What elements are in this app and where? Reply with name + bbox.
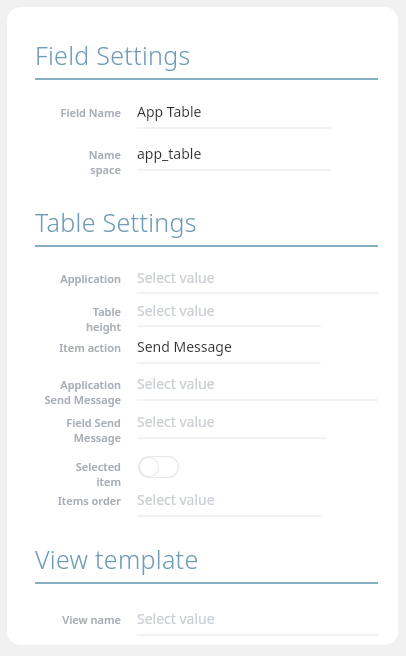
staticText: Field Send — [66, 415, 121, 430]
staticText: Table Settings — [35, 205, 197, 239]
staticText: Name — [88, 147, 121, 162]
button[interactable]: View name — [7, 609, 398, 645]
staticText: App Table — [137, 102, 202, 121]
button[interactable]: Name — [7, 144, 398, 188]
staticText: Select value — [137, 609, 215, 628]
button[interactable]: Item action — [7, 337, 398, 374]
staticText: Application — [60, 271, 121, 286]
staticText: item — [96, 474, 121, 489]
staticText: Select value — [137, 490, 215, 509]
button[interactable]: Items order — [7, 490, 398, 526]
staticText: Selected — [75, 459, 121, 474]
staticText: Send Message — [137, 337, 232, 356]
staticText: View name — [62, 612, 121, 627]
button[interactable]: Field Send — [7, 412, 398, 451]
staticText: height — [86, 319, 121, 334]
staticText: Select value — [137, 268, 215, 287]
staticText: Send Message — [44, 392, 121, 407]
staticText: Application — [60, 377, 121, 392]
staticText: View template — [35, 542, 199, 576]
staticText: Items order — [57, 493, 121, 508]
staticText: Item action — [59, 340, 121, 355]
staticText: Select value — [137, 412, 215, 431]
button[interactable]: Field Name — [7, 102, 398, 144]
button[interactable]: Table — [7, 301, 398, 337]
staticText: Field Name — [60, 105, 121, 120]
button[interactable]: Application — [7, 374, 398, 412]
button[interactable]: Application — [7, 268, 398, 301]
staticText: Select value — [137, 374, 215, 393]
staticText: Field Settings — [35, 38, 191, 72]
staticText: space — [90, 162, 121, 177]
staticText: Table — [92, 304, 121, 319]
staticText: Select value — [137, 301, 215, 320]
button[interactable]: Selected item toggle, off — [138, 456, 179, 478]
staticText: app_table — [137, 144, 202, 163]
staticText: Message — [73, 430, 121, 445]
